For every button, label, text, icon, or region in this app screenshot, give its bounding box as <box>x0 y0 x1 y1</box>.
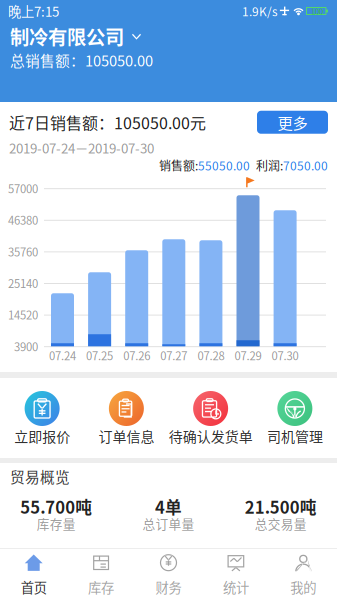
staticText: 07.26 <box>123 347 150 363</box>
button[interactable]: 首页 <box>0 552 67 596</box>
staticText: 晚上7:15 <box>8 1 59 21</box>
button[interactable]: 司机管理 <box>253 391 337 446</box>
button[interactable]: 更多 <box>257 111 328 134</box>
staticText: 利润: <box>250 156 283 174</box>
staticText: 总销售额：105050.00 <box>10 49 153 71</box>
staticText: 14520 <box>8 306 38 323</box>
staticText: 07.24 <box>49 347 76 363</box>
button[interactable]: 订单信息 <box>84 391 168 446</box>
staticText: 库存 <box>88 577 114 596</box>
button[interactable]: 库存 <box>67 552 135 596</box>
staticText: 4单 <box>155 494 182 518</box>
staticText: 46380 <box>8 212 38 228</box>
staticText: 07.28 <box>197 347 224 363</box>
staticText: 财务 <box>155 577 181 596</box>
button[interactable]: 立即报价 <box>0 391 84 446</box>
staticText: 7050.00 <box>283 156 328 174</box>
staticText: 07.27 <box>160 347 187 363</box>
staticText: 100 <box>311 5 323 17</box>
staticText: 07.30 <box>272 347 299 363</box>
staticText: 更多 <box>277 111 307 133</box>
staticText: 07.29 <box>234 347 261 363</box>
staticText: 待确认发货单 <box>169 426 253 446</box>
staticText: 订单信息 <box>98 426 154 446</box>
staticText: 统计 <box>223 577 249 596</box>
staticText: 首页 <box>21 577 47 596</box>
staticText: 总订单量 <box>142 514 194 533</box>
staticText: 2019-07-24－2019-07-30 <box>9 138 154 157</box>
button[interactable]: 财务 <box>135 552 202 596</box>
staticText: 销售额: <box>159 156 198 174</box>
staticText: 库存量 <box>37 514 76 533</box>
staticText: 07.25 <box>86 347 113 363</box>
staticText: 制冷有限公司 <box>10 22 124 50</box>
staticText: 司机管理 <box>267 426 323 446</box>
staticText: 总交易量 <box>255 514 307 533</box>
staticText: 贸易概览 <box>10 466 70 487</box>
button[interactable]: 待确认发货单 <box>168 391 253 446</box>
staticText: 3900 <box>14 338 38 354</box>
button[interactable]: 我的 <box>270 552 337 596</box>
staticText: 57000 <box>8 180 38 196</box>
staticText: 55.700吨 <box>20 494 92 518</box>
staticText: 立即报价 <box>14 426 70 446</box>
staticText: 近7日销售额：105050.00元 <box>9 111 206 134</box>
staticText: 21.500吨 <box>245 494 317 518</box>
staticText: 我的 <box>290 577 316 596</box>
button[interactable]: 统计 <box>202 552 270 596</box>
staticText: 1.9K/s <box>242 2 278 20</box>
staticText: 55050.00 <box>198 156 250 174</box>
staticText: 35760 <box>8 243 38 260</box>
staticText: 25140 <box>8 275 38 291</box>
